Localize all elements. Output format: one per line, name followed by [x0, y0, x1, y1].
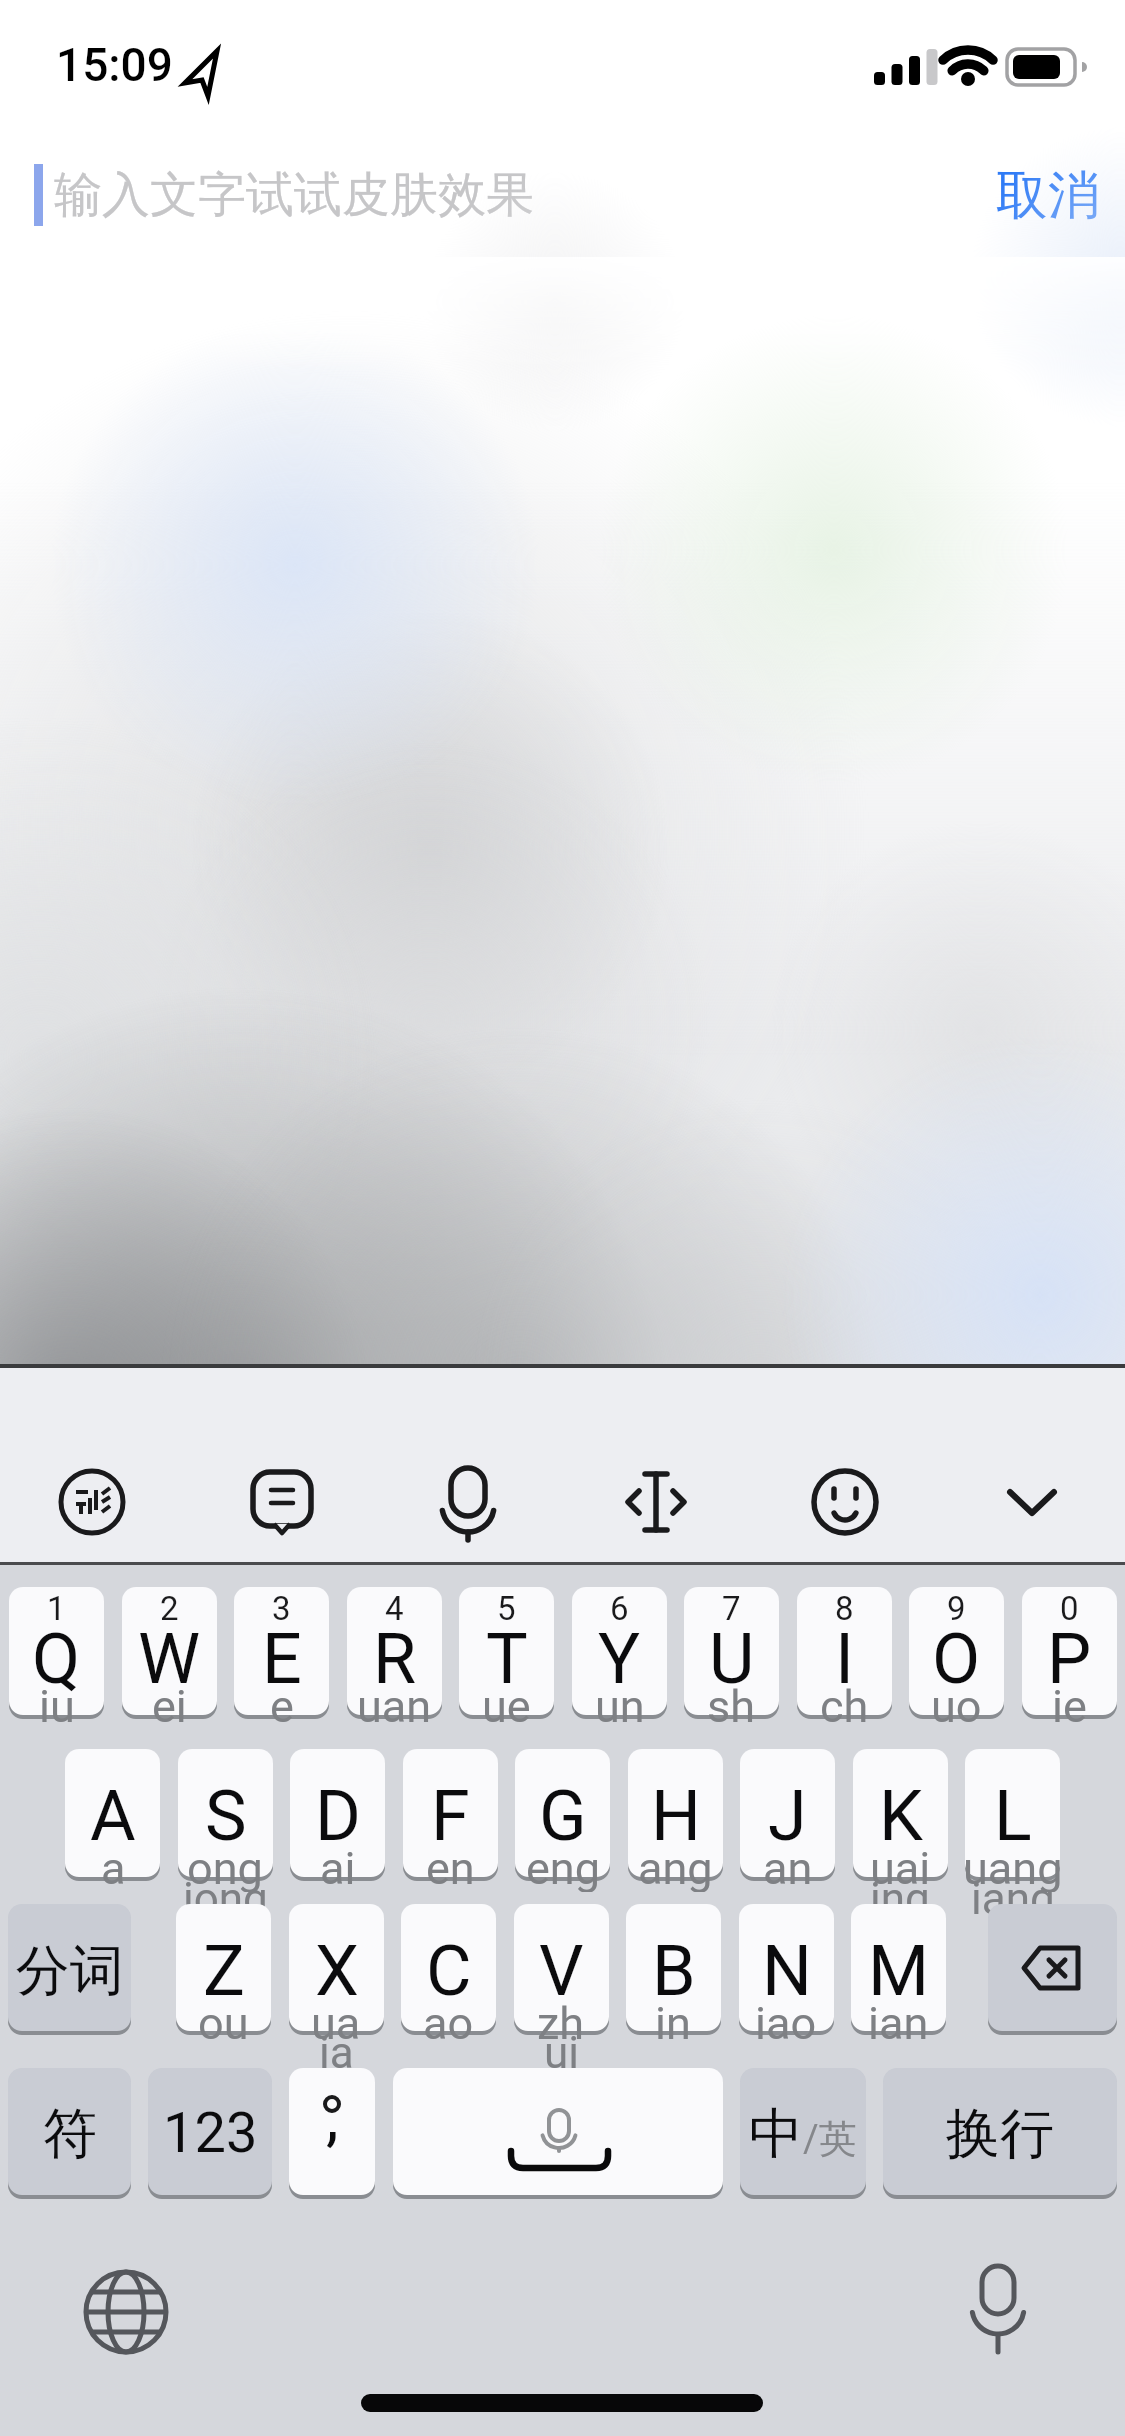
- staticText: 123: [163, 2100, 258, 2162]
- staticText: C: [426, 1930, 472, 2010]
- staticText: 分词: [16, 1937, 124, 1999]
- staticText: M: [868, 1930, 930, 2010]
- staticText: B: [652, 1930, 696, 2010]
- staticText: 8: [835, 1589, 854, 1627]
- staticText: ian: [868, 1997, 929, 2047]
- staticText: uai: [870, 1842, 931, 1892]
- staticText: F: [431, 1775, 470, 1855]
- staticText: X: [315, 1930, 359, 2010]
- staticText: 取消: [996, 163, 1100, 227]
- staticText: eng: [526, 1842, 600, 1892]
- staticText: ue: [482, 1680, 531, 1730]
- staticText: ui: [544, 2027, 579, 2077]
- staticText: S: [205, 1775, 247, 1855]
- staticText: ,: [326, 2080, 339, 2155]
- staticText: 9: [947, 1589, 966, 1627]
- staticText: ai: [320, 1842, 356, 1892]
- staticText: 中/英: [749, 2100, 857, 2162]
- staticText: sh: [707, 1680, 756, 1730]
- staticText: J: [768, 1775, 807, 1855]
- staticText: V: [539, 1930, 584, 2010]
- staticText: e: [270, 1680, 294, 1730]
- staticText: Z: [203, 1930, 245, 2010]
- staticText: Q: [32, 1618, 81, 1698]
- staticText: N: [762, 1930, 812, 2010]
- staticText: R: [373, 1618, 417, 1698]
- staticText: ch: [820, 1680, 869, 1730]
- staticText: uan: [357, 1680, 432, 1730]
- staticText: in: [655, 1997, 691, 2047]
- staticText: ang: [638, 1842, 713, 1892]
- staticText: an: [763, 1842, 813, 1892]
- staticText: ong: [187, 1842, 263, 1892]
- staticText: P: [1047, 1618, 1092, 1698]
- staticText: en: [426, 1842, 475, 1892]
- staticText: iu: [39, 1680, 75, 1730]
- staticText: 5: [497, 1589, 516, 1627]
- staticText: A: [90, 1775, 136, 1855]
- staticText: 3: [272, 1589, 291, 1627]
- staticText: E: [262, 1618, 302, 1698]
- staticText: iao: [755, 1997, 817, 2047]
- staticText: H: [651, 1775, 701, 1855]
- staticText: 输入文字试试皮肤效果: [54, 165, 534, 225]
- staticText: uo: [931, 1680, 982, 1730]
- staticText: O: [932, 1618, 981, 1698]
- staticText: 换行: [946, 2100, 1054, 2162]
- staticText: 6: [610, 1589, 629, 1627]
- staticText: L: [994, 1775, 1032, 1855]
- staticText: T: [486, 1618, 528, 1698]
- staticText: 4: [385, 1589, 404, 1627]
- staticText: ing: [870, 1873, 930, 1923]
- staticText: 7: [722, 1589, 741, 1627]
- staticText: Y: [598, 1618, 641, 1698]
- staticText: 符: [43, 2100, 97, 2162]
- staticText: iong: [183, 1873, 268, 1923]
- staticText: 2: [160, 1589, 179, 1627]
- staticText: a: [101, 1842, 126, 1892]
- staticText: 1: [47, 1589, 66, 1627]
- staticText: ao: [423, 1997, 474, 2047]
- staticText: W: [138, 1618, 201, 1698]
- staticText: I: [835, 1618, 855, 1698]
- staticText: uang: [963, 1842, 1063, 1892]
- staticText: 15:09: [56, 38, 173, 92]
- staticText: ia: [319, 2027, 354, 2077]
- staticText: K: [879, 1775, 923, 1855]
- staticText: ua: [311, 1997, 361, 2047]
- staticText: un: [595, 1680, 645, 1730]
- staticText: U: [709, 1618, 755, 1698]
- staticText: ie: [1052, 1680, 1087, 1730]
- staticText: iang: [971, 1873, 1055, 1923]
- staticText: D: [315, 1775, 361, 1855]
- staticText: G: [539, 1775, 587, 1855]
- staticText: zh: [537, 1997, 585, 2047]
- staticText: 0: [1060, 1589, 1079, 1627]
- staticText: ou: [198, 1997, 249, 2047]
- staticText: ei: [152, 1680, 187, 1730]
